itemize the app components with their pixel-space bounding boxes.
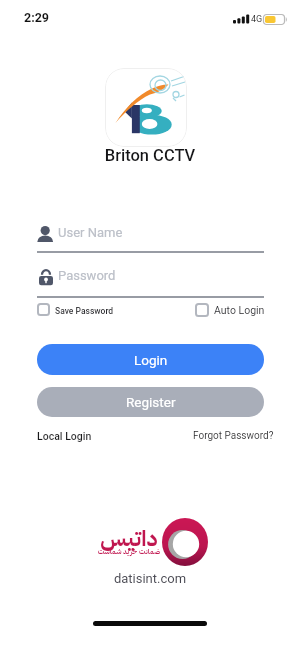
button[interactable]: Auto Login: [192, 299, 268, 319]
staticText: ضمانت خرید شماست: [89, 546, 169, 557]
staticText: Login: [134, 352, 168, 368]
staticText: Forgot Password?: [193, 430, 274, 442]
staticText: داتیس: [96, 522, 162, 555]
staticText: datisint.com: [0, 571, 300, 586]
button[interactable]: Register: [37, 387, 264, 417]
button[interactable]: User Name: [36, 221, 264, 252]
button[interactable]: datisint.com: [0, 571, 300, 586]
staticText: 2:29: [24, 10, 50, 25]
staticText: Briton CCTV: [0, 146, 300, 165]
button[interactable]: Login: [37, 344, 264, 375]
staticText: Register: [126, 394, 176, 410]
button[interactable]: Save Password: [34, 300, 134, 320]
staticText: Password: [58, 268, 116, 283]
staticText: Auto Login: [214, 304, 265, 316]
staticText: 4G: [251, 14, 263, 25]
staticText: Local Login: [37, 430, 92, 442]
button[interactable]: Local Login: [30, 425, 100, 447]
button[interactable]: Forgot Password?: [188, 425, 270, 447]
staticText: User Name: [58, 225, 123, 240]
button[interactable]: Password: [36, 264, 264, 296]
staticText: Save Password: [55, 306, 114, 316]
